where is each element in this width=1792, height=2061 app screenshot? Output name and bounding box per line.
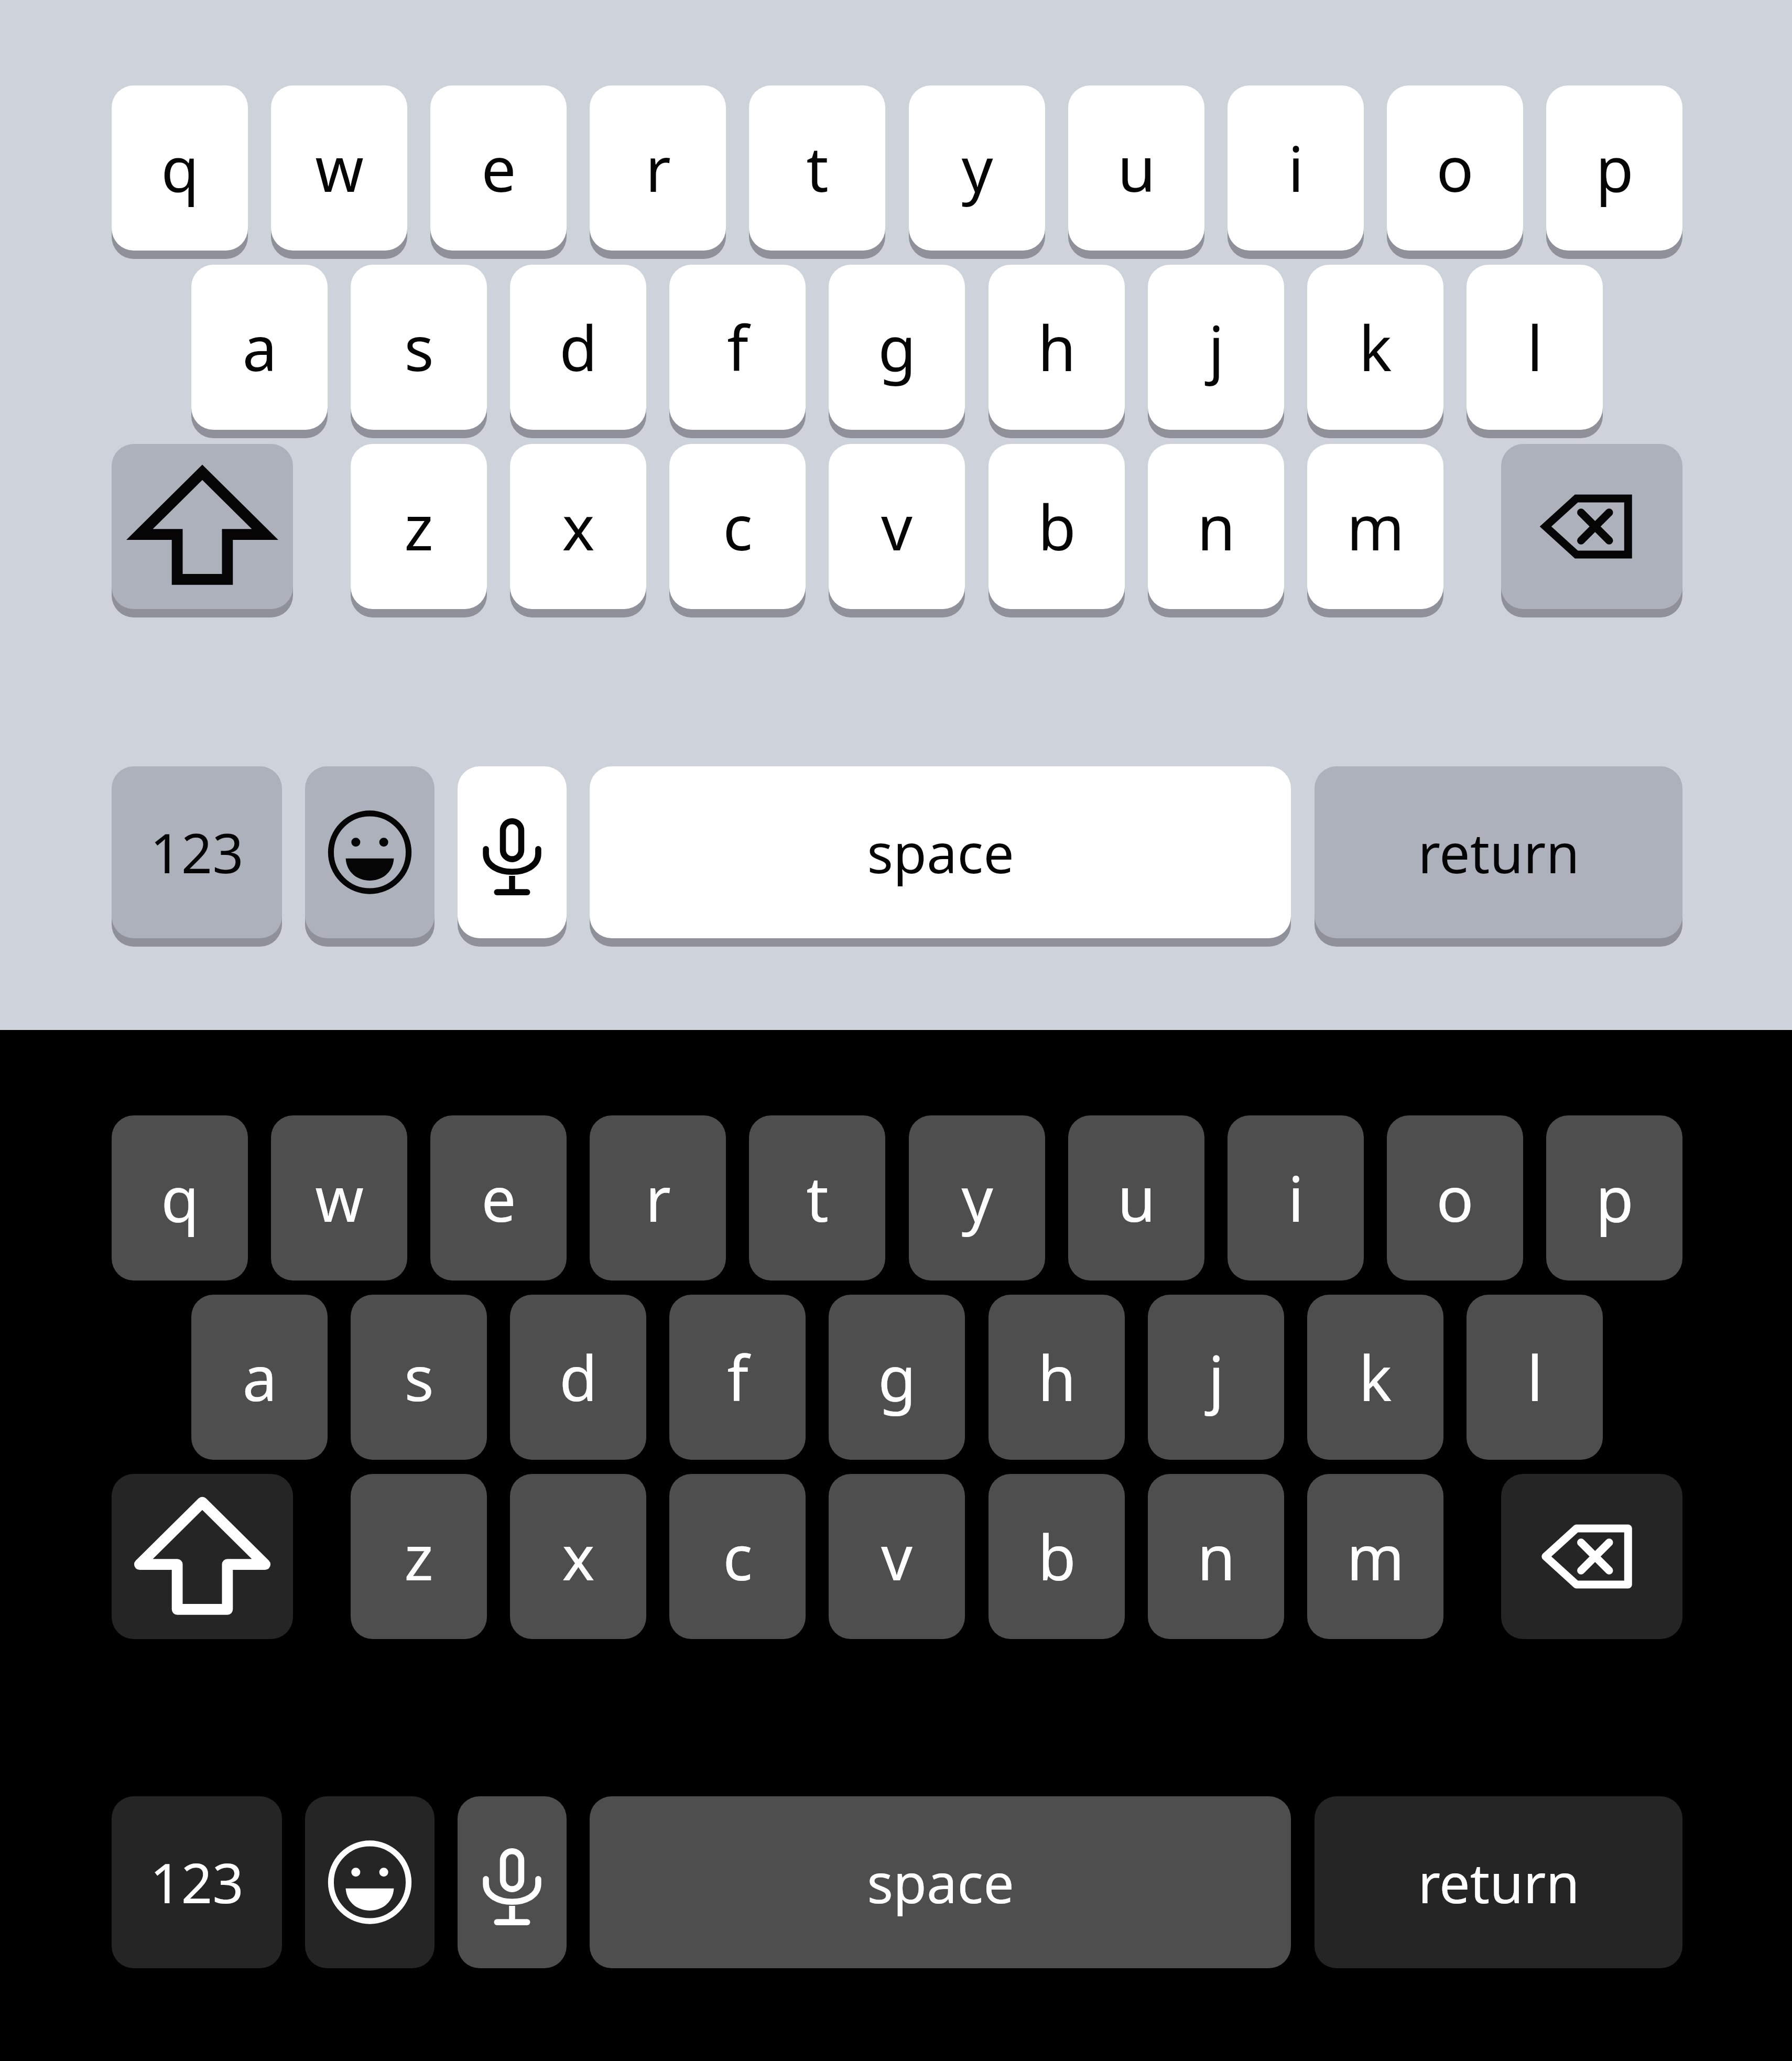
- button[interactable]: j: [1148, 265, 1284, 438]
- staticText: s: [404, 1335, 434, 1419]
- button[interactable]: a: [191, 265, 328, 438]
- button[interactable]: p: [1546, 1115, 1682, 1281]
- button[interactable]: m: [1307, 1474, 1443, 1639]
- staticText: i: [1288, 126, 1304, 210]
- button[interactable]: Emoji: [305, 766, 435, 947]
- staticText: space: [867, 815, 1014, 890]
- staticText: r: [645, 1156, 671, 1240]
- button[interactable]: k: [1307, 265, 1443, 438]
- staticText: t: [806, 1156, 829, 1240]
- button[interactable]: Shift: [112, 1474, 293, 1639]
- button[interactable]: u: [1068, 1115, 1204, 1281]
- staticText: q: [161, 126, 199, 210]
- button[interactable]: y: [909, 85, 1045, 259]
- staticText: w: [315, 126, 364, 210]
- button[interactable]: u: [1068, 85, 1204, 259]
- button[interactable]: Emoji: [305, 1796, 435, 1968]
- button[interactable]: Voice input: [458, 1796, 567, 1968]
- staticText: b: [1038, 1514, 1076, 1599]
- button[interactable]: g: [829, 265, 965, 438]
- button[interactable]: Shift: [112, 444, 293, 617]
- staticText: t: [806, 126, 829, 210]
- button[interactable]: space: [590, 766, 1291, 947]
- button[interactable]: k: [1307, 1295, 1443, 1460]
- button[interactable]: b: [989, 444, 1125, 617]
- button[interactable]: g: [829, 1295, 965, 1460]
- button[interactable]: h: [989, 1295, 1125, 1460]
- staticText: e: [481, 1156, 516, 1240]
- button[interactable]: y: [909, 1115, 1045, 1281]
- staticText: b: [1038, 484, 1076, 569]
- button[interactable]: w: [271, 85, 407, 259]
- button[interactable]: w: [271, 1115, 407, 1281]
- button[interactable]: e: [430, 85, 567, 259]
- staticText: z: [404, 1514, 433, 1599]
- staticText: e: [481, 126, 516, 210]
- button[interactable]: e: [430, 1115, 567, 1281]
- button[interactable]: a: [191, 1295, 328, 1460]
- button[interactable]: j: [1148, 1295, 1284, 1460]
- button[interactable]: h: [989, 265, 1125, 438]
- button[interactable]: l: [1467, 1295, 1603, 1460]
- staticText: c: [723, 484, 753, 569]
- button[interactable]: Voice input: [458, 766, 567, 947]
- staticText: c: [723, 1514, 753, 1599]
- button[interactable]: space: [590, 1796, 1291, 1968]
- staticText: o: [1436, 1156, 1474, 1240]
- button[interactable]: s: [351, 1295, 487, 1460]
- button[interactable]: n: [1148, 1474, 1284, 1639]
- staticText: n: [1197, 484, 1235, 569]
- staticText: n: [1197, 1514, 1235, 1599]
- staticText: a: [242, 1335, 277, 1419]
- button[interactable]: x: [510, 444, 646, 617]
- staticText: z: [404, 484, 433, 569]
- button[interactable]: q: [112, 1115, 248, 1281]
- button[interactable]: return: [1315, 1796, 1682, 1968]
- button[interactable]: c: [669, 444, 806, 617]
- button[interactable]: z: [351, 444, 487, 617]
- button[interactable]: o: [1387, 85, 1523, 259]
- button[interactable]: return: [1315, 766, 1682, 947]
- button[interactable]: v: [829, 1474, 965, 1639]
- button[interactable]: c: [669, 1474, 806, 1639]
- button[interactable]: o: [1387, 1115, 1523, 1281]
- staticText: return: [1418, 815, 1580, 890]
- button[interactable]: d: [510, 1295, 646, 1460]
- staticText: s: [404, 305, 434, 389]
- staticText: d: [559, 305, 598, 389]
- button[interactable]: t: [749, 85, 885, 259]
- button[interactable]: 123: [112, 1796, 282, 1968]
- button[interactable]: d: [510, 265, 646, 438]
- button[interactable]: q: [112, 85, 248, 259]
- button[interactable]: v: [829, 444, 965, 617]
- button[interactable]: z: [351, 1474, 487, 1639]
- button[interactable]: m: [1307, 444, 1443, 617]
- staticText: r: [645, 126, 671, 210]
- staticText: p: [1595, 1156, 1634, 1240]
- staticText: y: [961, 1156, 993, 1240]
- staticText: v: [881, 484, 913, 569]
- button[interactable]: Backspace: [1501, 444, 1682, 617]
- staticText: a: [242, 305, 277, 389]
- button[interactable]: 123: [112, 766, 282, 947]
- button[interactable]: b: [989, 1474, 1125, 1639]
- staticText: m: [1346, 484, 1405, 569]
- staticText: u: [1117, 126, 1156, 210]
- button[interactable]: s: [351, 265, 487, 438]
- button[interactable]: f: [669, 1295, 806, 1460]
- button[interactable]: p: [1546, 85, 1682, 259]
- staticText: d: [559, 1335, 598, 1419]
- button[interactable]: i: [1228, 1115, 1364, 1281]
- staticText: g: [878, 1335, 916, 1419]
- button[interactable]: r: [590, 1115, 726, 1281]
- button[interactable]: l: [1467, 265, 1603, 438]
- button[interactable]: i: [1228, 85, 1364, 259]
- button[interactable]: x: [510, 1474, 646, 1639]
- button[interactable]: n: [1148, 444, 1284, 617]
- button[interactable]: t: [749, 1115, 885, 1281]
- button[interactable]: r: [590, 85, 726, 259]
- staticText: j: [1208, 305, 1224, 389]
- button[interactable]: f: [669, 265, 806, 438]
- staticText: m: [1346, 1514, 1405, 1599]
- button[interactable]: Backspace: [1501, 1474, 1682, 1639]
